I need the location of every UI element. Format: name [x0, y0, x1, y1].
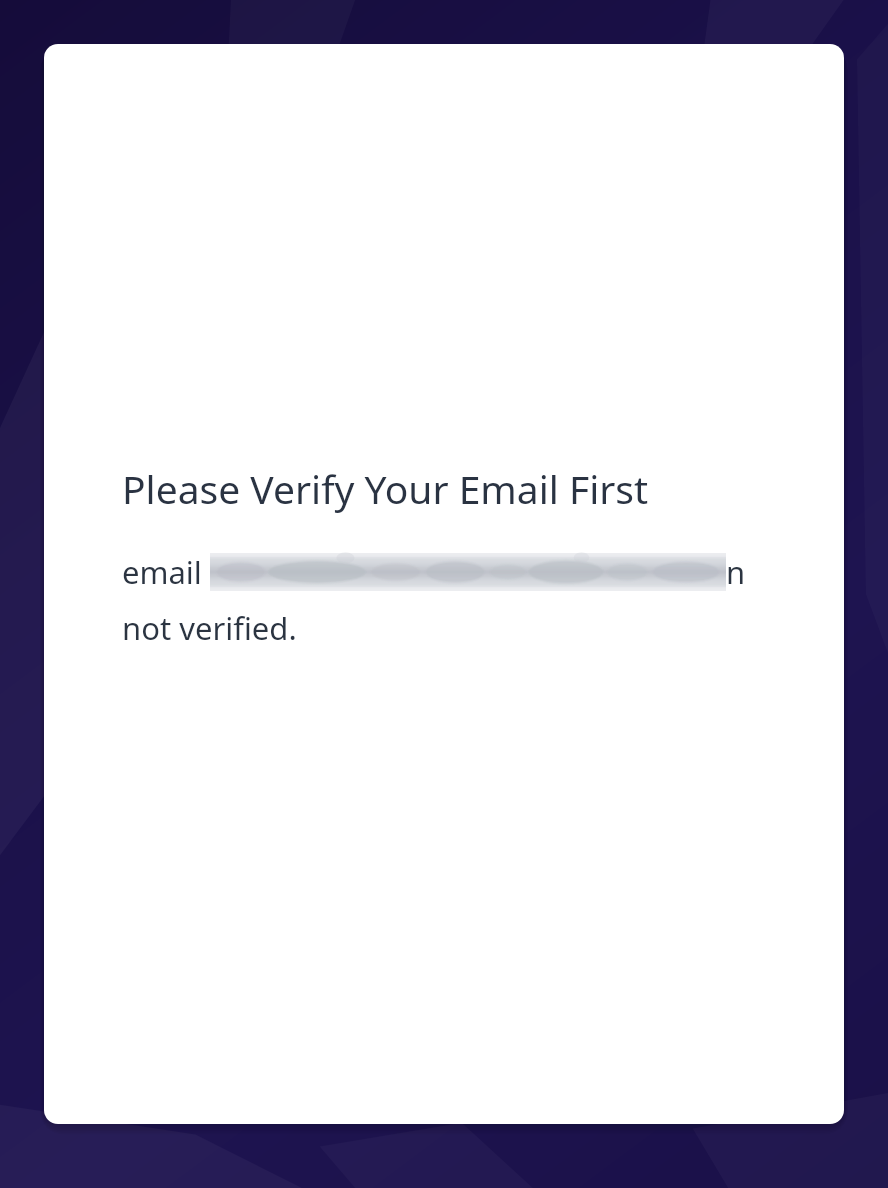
- staticText: not verified.: [122, 607, 297, 649]
- staticText: email: [122, 551, 210, 593]
- staticText: Please Verify Your Email First: [122, 462, 649, 515]
- staticText: n: [726, 551, 746, 593]
